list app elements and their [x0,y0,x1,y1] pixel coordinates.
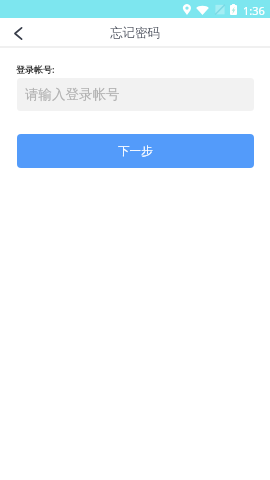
staticText: 登录帐号: [16,63,55,75]
button[interactable]: 请输入登录帐号 [17,78,254,111]
staticText: 请输入登录帐号 [25,86,120,103]
button[interactable]: 下一步 [17,134,254,168]
staticText: 下一步 [118,144,153,158]
staticText: 忘记密码 [110,25,160,41]
staticText: 1:36 [243,3,265,18]
button[interactable]: Back [0,18,36,48]
